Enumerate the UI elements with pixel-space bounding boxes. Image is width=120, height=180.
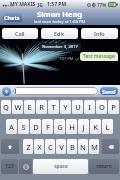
staticText: A	[9, 122, 14, 132]
staticText: H	[69, 122, 75, 132]
button[interactable]: X	[34, 139, 44, 154]
staticText: Simon Heng	[37, 9, 83, 19]
staticText: G	[57, 122, 63, 132]
staticText: Y	[63, 102, 68, 112]
button[interactable]: P	[108, 100, 119, 114]
button[interactable]: Attach	[2, 87, 11, 96]
button[interactable]: B	[67, 139, 77, 154]
staticText: 1:57 PM	[59, 56, 74, 61]
staticText: B	[70, 142, 75, 152]
staticText: return	[96, 163, 112, 170]
staticText: MY MAXIS	[10, 1, 36, 8]
staticText: L	[105, 122, 110, 132]
staticText: U	[75, 102, 81, 112]
button[interactable]: H	[66, 119, 77, 134]
staticText: T	[51, 102, 56, 112]
button[interactable]: F	[42, 119, 53, 134]
button[interactable]: Y	[60, 100, 71, 114]
staticText: P	[111, 102, 116, 112]
button[interactable]: Edit	[41, 28, 78, 39]
button[interactable]: Call	[2, 28, 38, 39]
button[interactable]: J	[78, 119, 89, 134]
staticText: 3G	[37, 2, 43, 8]
staticText: D	[33, 122, 39, 132]
button[interactable]: Z	[23, 139, 33, 154]
button[interactable]: M	[89, 139, 99, 154]
staticText: N	[80, 142, 86, 152]
staticText: Info	[94, 30, 105, 37]
button[interactable]: R	[36, 100, 47, 114]
button[interactable]: E	[24, 100, 35, 114]
staticText: S	[21, 122, 26, 132]
button[interactable]: G	[54, 119, 65, 134]
staticText: Q	[3, 102, 9, 112]
button[interactable]: A	[6, 119, 17, 134]
staticText: 123	[5, 163, 14, 170]
button[interactable]: Chats	[2, 13, 22, 22]
button[interactable]: L	[102, 119, 113, 134]
staticText: M	[91, 142, 98, 152]
button[interactable]: Info	[81, 28, 118, 39]
button[interactable]: V	[56, 139, 66, 154]
button[interactable]: O	[96, 100, 107, 114]
staticText: Chats	[4, 14, 20, 21]
staticText: last seen today at 1:04 PM	[34, 19, 86, 25]
button[interactable]: Q	[1, 100, 11, 114]
staticText: I	[88, 102, 91, 112]
button[interactable]: N	[78, 139, 88, 154]
button[interactable]: K	[90, 119, 101, 134]
button[interactable]	[1, 139, 19, 154]
button[interactable]	[13, 87, 98, 95]
staticText: Test message	[83, 53, 115, 60]
staticText: Send	[102, 88, 116, 95]
button[interactable]: D	[30, 119, 41, 134]
staticText: V	[59, 142, 64, 152]
staticText: 1:57 PM	[47, 1, 67, 8]
button[interactable]	[102, 139, 119, 154]
button[interactable]: U	[72, 100, 83, 114]
staticText: O	[99, 102, 105, 112]
button[interactable]: C	[45, 139, 55, 154]
staticText: W	[14, 102, 22, 112]
staticText: F	[46, 122, 50, 132]
staticText: Edit	[54, 30, 65, 37]
staticText: X	[37, 142, 42, 152]
button[interactable]: S	[18, 119, 29, 134]
staticText: Call	[15, 30, 25, 37]
button[interactable]: W	[12, 100, 23, 114]
button[interactable]: T	[48, 100, 59, 114]
staticText: K	[93, 122, 98, 132]
staticText: 77%	[97, 2, 107, 8]
button[interactable]	[19, 159, 32, 174]
staticText: November 3, 2017	[42, 44, 78, 50]
staticText: C	[48, 142, 53, 152]
button[interactable]: Send	[100, 87, 118, 95]
staticText: J	[82, 122, 85, 132]
staticText: space	[54, 163, 68, 170]
staticText: E	[27, 102, 32, 112]
button[interactable]: space	[33, 159, 88, 174]
button[interactable]: return	[89, 159, 119, 174]
button[interactable]: 123	[1, 159, 18, 174]
staticText: R	[39, 102, 44, 112]
button[interactable]: I	[84, 100, 95, 114]
staticText: Z	[26, 142, 31, 152]
